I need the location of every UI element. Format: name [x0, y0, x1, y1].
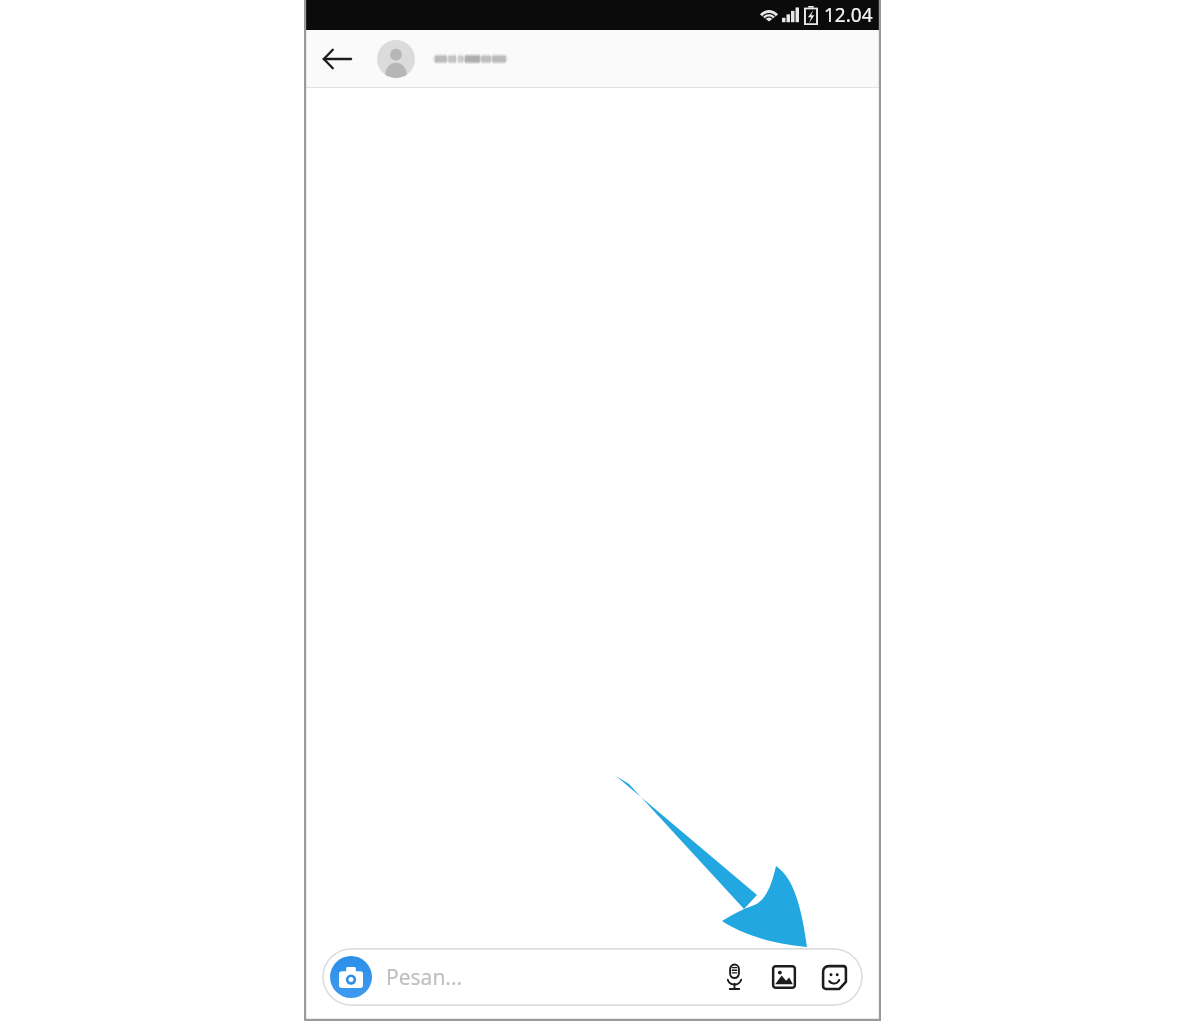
button[interactable]: Voice message [713, 956, 755, 998]
staticText: Pesan... [386, 963, 713, 992]
button[interactable]: Camera [322, 948, 863, 1006]
button[interactable]: Back [314, 36, 360, 82]
button[interactable]: Profile picture [377, 40, 415, 78]
button[interactable]: Camera [330, 956, 372, 998]
button[interactable]: Stickers [813, 956, 855, 998]
staticText: 12.04 [824, 2, 873, 28]
button[interactable] [435, 51, 507, 67]
button[interactable]: Gallery [763, 956, 805, 998]
